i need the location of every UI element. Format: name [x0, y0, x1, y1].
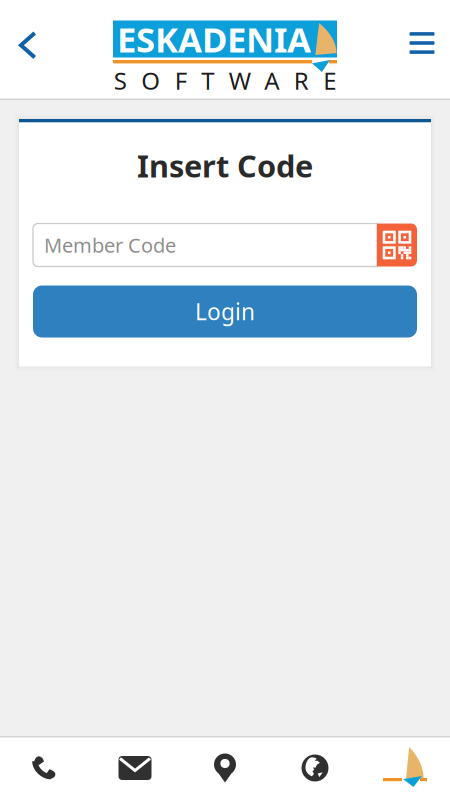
button[interactable]: Back [0, 0, 56, 100]
staticText: SOFTWARE [114, 65, 336, 96]
button[interactable]: Website [270, 736, 360, 800]
button[interactable]: Scan QR code [377, 223, 417, 266]
button[interactable]: Login [19, 285, 431, 337]
button[interactable]: Eskadenia [360, 736, 450, 800]
button[interactable]: Menu [394, 0, 450, 100]
button[interactable]: Call [0, 736, 90, 800]
staticText: Member Code [44, 232, 176, 258]
staticText: Insert Code [137, 145, 313, 186]
button[interactable]: Email [90, 736, 180, 800]
button[interactable]: Location [180, 736, 270, 800]
staticText: Login [195, 296, 255, 326]
staticText: ESKADENIA [117, 16, 311, 62]
